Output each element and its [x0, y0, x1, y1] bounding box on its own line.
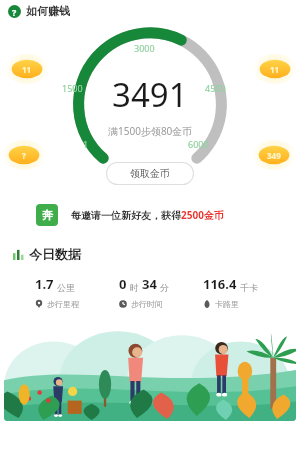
staticText: 6000 [188, 138, 209, 150]
staticText: 0 [119, 275, 127, 293]
staticText: 3000 [134, 42, 155, 54]
staticText: 满1500步领80金币 [108, 124, 193, 138]
staticText: 34 [142, 275, 157, 293]
staticText: 分 [160, 282, 169, 293]
staticText: 卡路里 [215, 299, 239, 309]
staticText: 1500 [62, 82, 83, 94]
staticText: 领取金币 [130, 167, 170, 180]
staticText: 349 [267, 150, 281, 161]
staticText: ? [12, 6, 17, 18]
staticText: 11 [270, 64, 280, 75]
staticText: 今日数据 [29, 246, 81, 262]
staticText: 奔 [42, 208, 53, 222]
staticText: 3491 [112, 72, 188, 117]
button[interactable]: Coin reward ? [2, 140, 46, 170]
staticText: 步行里程 [47, 299, 79, 309]
staticText: 时 [130, 282, 139, 293]
staticText: 1.7 [35, 275, 54, 293]
staticText: 1 [83, 138, 89, 150]
button[interactable]: Coin reward 11 [253, 54, 297, 84]
staticText: 4500 [205, 82, 226, 94]
button[interactable]: Coin reward 11 [5, 54, 49, 84]
button[interactable]: 奔 [10, 196, 290, 234]
staticText: ? [22, 150, 26, 161]
staticText: 步行时间 [131, 299, 163, 309]
button[interactable]: Coin reward 349 [252, 140, 296, 170]
staticText: 千卡 [240, 282, 258, 293]
staticText: 公里 [57, 282, 75, 293]
staticText: 116.4 [203, 275, 237, 293]
staticText: 如何赚钱 [26, 4, 70, 18]
staticText: 每邀请一位新好友，获得2500金币 [71, 208, 224, 222]
button[interactable]: 领取金币 [107, 163, 193, 184]
staticText: 11 [22, 64, 32, 75]
button[interactable]: How to earn money help [8, 5, 21, 18]
